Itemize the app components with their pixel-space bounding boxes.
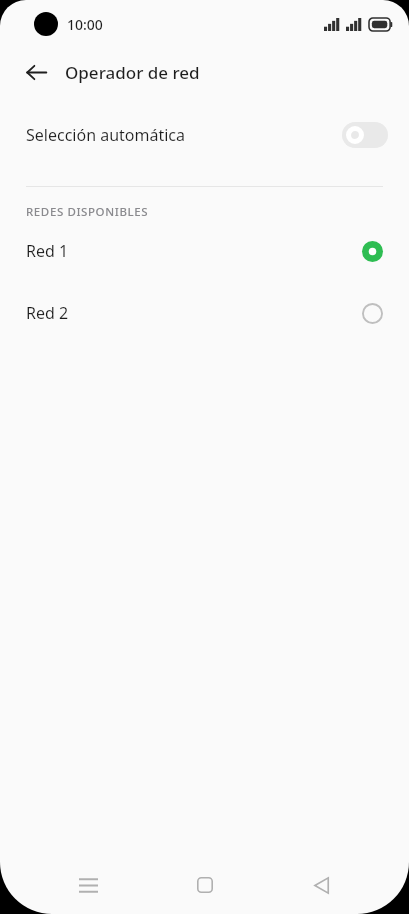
staticText: Operador de red xyxy=(65,61,200,84)
staticText: Red 1 xyxy=(26,240,362,262)
button[interactable]: Back xyxy=(293,857,349,913)
staticText: Red 2 xyxy=(26,302,362,324)
button[interactable]: Selección automática xyxy=(0,106,409,164)
button[interactable]: Home xyxy=(177,857,233,913)
staticText: Selección automática xyxy=(26,124,342,146)
button[interactable]: Red 1 xyxy=(0,238,409,264)
staticText: REDES DISPONIBLES xyxy=(26,204,149,220)
button[interactable]: Red 2 xyxy=(0,300,409,326)
button[interactable]: Back xyxy=(14,50,58,94)
button[interactable]: Recents xyxy=(60,857,116,913)
staticText: 10:00 xyxy=(67,15,103,34)
button[interactable]: Selección automática toggle xyxy=(342,122,388,148)
